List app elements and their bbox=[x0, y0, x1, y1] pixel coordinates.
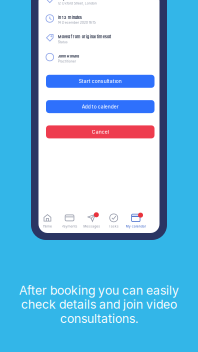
staticText: Tasks bbox=[109, 224, 119, 228]
button[interactable]: Messages bbox=[81, 210, 103, 232]
button[interactable]: Cancel bbox=[46, 125, 154, 138]
button[interactable]: Add to calender bbox=[46, 100, 154, 113]
staticText: Payments bbox=[61, 224, 77, 228]
staticText: consultations. bbox=[60, 311, 138, 326]
staticText: Practitioner bbox=[58, 59, 76, 63]
staticText: 14 December 2020 16:15 bbox=[58, 20, 96, 25]
staticText: At your home bbox=[58, 0, 82, 1]
button[interactable]: My calendar bbox=[125, 210, 147, 232]
button[interactable]: Start consultation bbox=[46, 75, 154, 88]
staticText: John Ronald bbox=[58, 54, 79, 58]
button[interactable]: Home bbox=[36, 210, 58, 232]
staticText: check details and join video bbox=[21, 297, 177, 312]
staticText: Moved from original timeslot bbox=[58, 34, 111, 39]
staticText: in 13 minutes bbox=[58, 15, 82, 20]
staticText: My calendar bbox=[126, 224, 146, 228]
staticText: 12 Oxford Street, London bbox=[58, 1, 97, 5]
staticText: Status bbox=[58, 40, 68, 44]
button[interactable]: Payments bbox=[58, 210, 81, 232]
button[interactable]: Tasks bbox=[103, 210, 125, 232]
staticText: Start consultation bbox=[79, 78, 122, 84]
staticText: Messages bbox=[83, 224, 100, 228]
staticText: Add to calender bbox=[82, 104, 119, 110]
staticText: After booking you can easily bbox=[19, 283, 179, 298]
staticText: Cancel bbox=[92, 129, 109, 135]
staticText: Home bbox=[43, 224, 52, 228]
